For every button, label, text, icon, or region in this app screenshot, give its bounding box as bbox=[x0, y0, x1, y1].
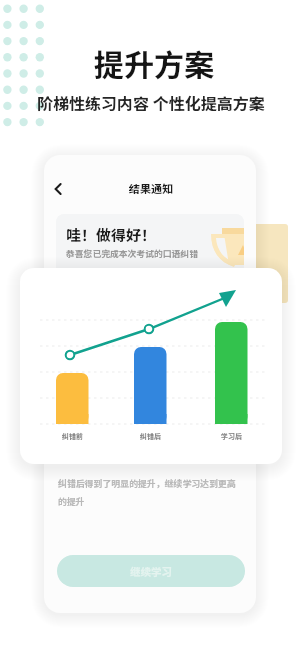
staticText: 提升方案 bbox=[94, 41, 214, 84]
staticText: 纠错后 bbox=[140, 431, 161, 441]
staticText: 阶梯性练习内容 个性化提高方案 bbox=[37, 91, 265, 114]
button[interactable]: 继续学习 bbox=[57, 555, 245, 587]
staticText: 继续学习 bbox=[130, 564, 172, 579]
staticText: 恭喜您已完成本次考试的口语纠错 bbox=[66, 247, 198, 260]
staticText: 哇！做得好！ bbox=[66, 224, 157, 246]
staticText: 纠错前 bbox=[62, 431, 83, 441]
staticText: 纠错后得到了明显的提升，继续学习达到更高的提升 bbox=[58, 477, 238, 507]
button[interactable]: Back bbox=[46, 177, 70, 201]
staticText: 结果通知 bbox=[129, 180, 173, 196]
staticText: 学习后 bbox=[221, 431, 242, 441]
